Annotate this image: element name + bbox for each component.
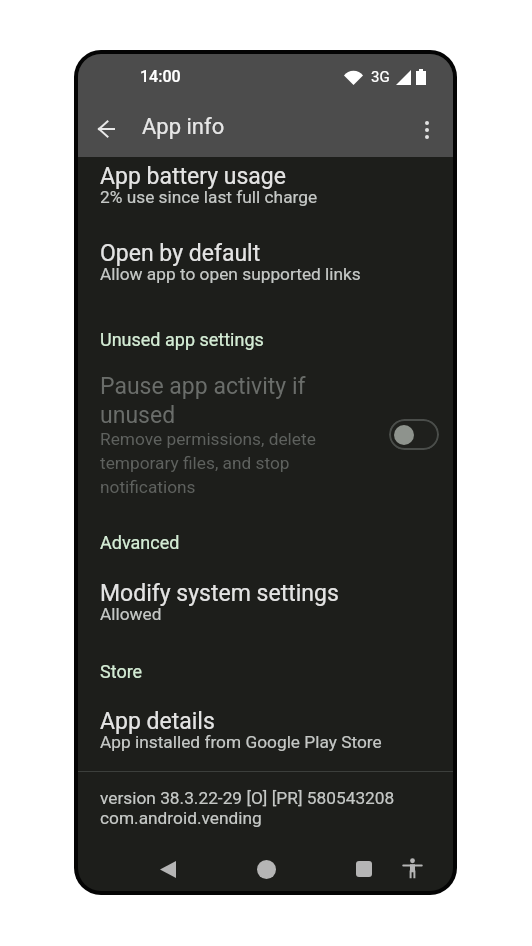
staticText: App info [142, 114, 225, 140]
staticText: version 38.3.22-29 [O] [PR] 580543208 [100, 788, 395, 808]
button[interactable]: Recent apps [344, 849, 384, 889]
button[interactable]: Modify system settings [78, 574, 453, 633]
button[interactable]: Pause app activity if unused [100, 373, 338, 497]
staticText: App battery usage [100, 163, 286, 190]
staticText: Allowed [100, 604, 162, 624]
staticText: Advanced [100, 532, 180, 553]
staticText: 3G [371, 68, 390, 86]
button[interactable]: App details [78, 702, 453, 761]
button[interactable]: Accessibility [392, 848, 432, 888]
button[interactable]: Back [148, 849, 188, 889]
staticText: Open by default [100, 240, 261, 267]
staticText: App details [100, 708, 215, 735]
button[interactable]: Home [246, 849, 286, 889]
staticText: App installed from Google Play Store [100, 732, 382, 752]
staticText: com.android.vending [100, 808, 262, 828]
staticText: Remove permissions, delete temporary fil… [100, 429, 338, 497]
button[interactable]: Pause app activity if unused toggle [389, 419, 439, 450]
button[interactable]: Back [86, 109, 126, 149]
staticText: Unused app settings [100, 329, 264, 350]
button[interactable]: App battery usage [78, 157, 453, 216]
staticText: 14:00 [140, 67, 181, 86]
button[interactable]: Open by default [78, 234, 453, 293]
staticText: Allow app to open supported links [100, 264, 361, 284]
button[interactable]: More options [407, 110, 447, 150]
staticText: Store [100, 661, 143, 682]
staticText: Pause app activity if unused [100, 373, 338, 429]
staticText: 2% use since last full charge [100, 187, 318, 207]
staticText: Modify system settings [100, 580, 339, 607]
